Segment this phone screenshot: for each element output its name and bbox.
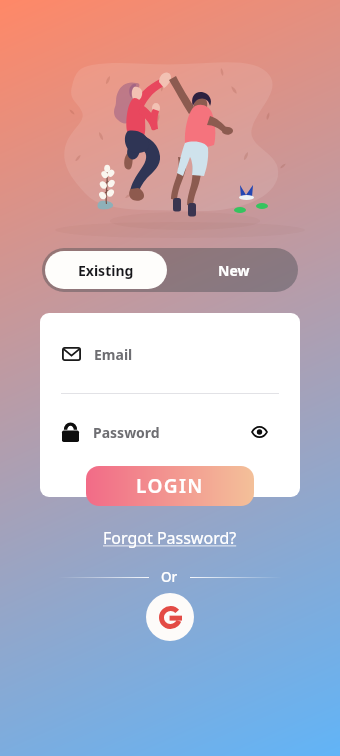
staticText: Forgot Password?	[103, 527, 237, 549]
button[interactable]: Show password	[247, 420, 271, 444]
button[interactable]: Existing	[45, 251, 167, 289]
button[interactable]: LOGIN	[86, 466, 254, 506]
button[interactable]: New	[170, 248, 298, 292]
staticText: Existing	[78, 261, 134, 280]
staticText: New	[218, 261, 250, 280]
button[interactable]: Sign in with Google	[146, 593, 194, 641]
staticText: Email	[94, 345, 133, 364]
staticText: Password	[93, 423, 160, 442]
staticText: Or	[161, 568, 178, 586]
button[interactable]: Forgot Password?	[97, 524, 243, 552]
staticText: LOGIN	[136, 473, 204, 499]
